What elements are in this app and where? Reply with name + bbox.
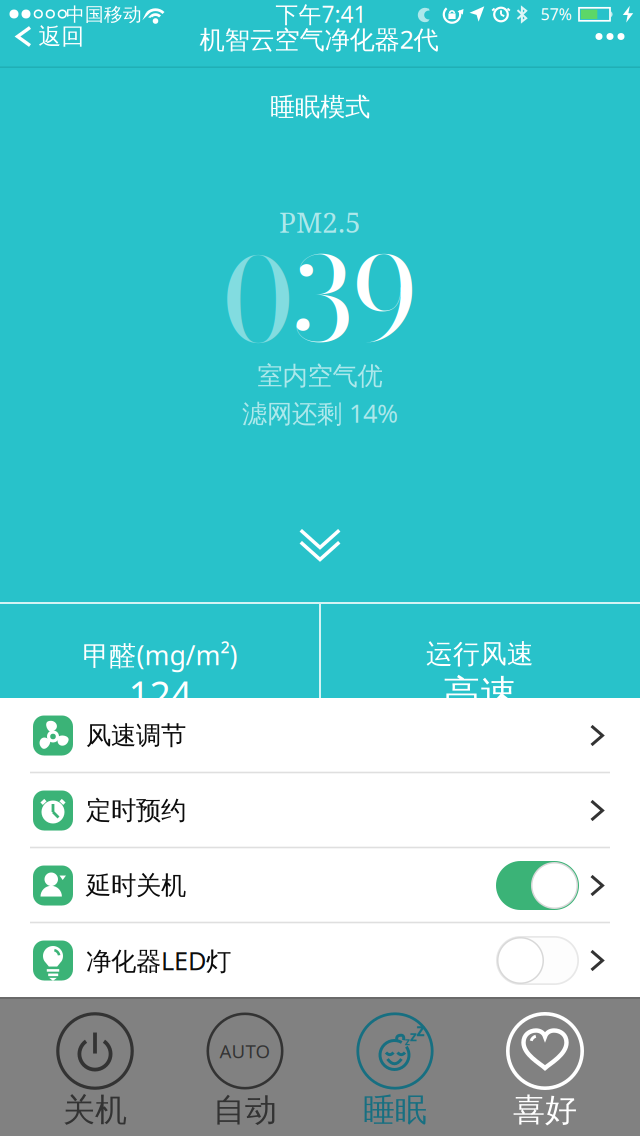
staticText: 中国移动	[66, 3, 142, 26]
staticText: z	[409, 1026, 416, 1045]
staticText: 高速	[443, 671, 517, 717]
staticText: PM2.5	[279, 203, 361, 241]
button[interactable]: 关机	[20, 998, 170, 1136]
button[interactable]: More	[595, 28, 624, 45]
staticText: z	[404, 1034, 409, 1048]
staticText: 滤网还剩 14%	[242, 396, 398, 430]
button[interactable]: 返回	[7, 16, 93, 56]
button[interactable]: 净化器LED灯	[0, 923, 640, 998]
staticText: 0	[222, 213, 293, 387]
button[interactable]: 定时预约	[0, 773, 640, 848]
staticText: 睡眠模式	[270, 91, 370, 122]
staticText: 甲醛(mg/m²)	[82, 637, 237, 673]
staticText: 39	[293, 213, 417, 387]
staticText: 净化器LED灯	[86, 944, 231, 977]
button[interactable]: AUTO	[170, 998, 320, 1136]
button[interactable]: Switch off	[496, 936, 579, 985]
staticText: 延时关机	[86, 870, 186, 901]
button[interactable]: 延时关机	[0, 848, 640, 923]
button[interactable]: 风速调节	[0, 698, 640, 773]
staticText: 下午7:41	[275, 0, 366, 29]
staticText: AUTO	[219, 1039, 270, 1063]
button[interactable]: z	[320, 998, 470, 1136]
staticText: 室内空气优	[257, 360, 382, 391]
button[interactable]: Collapse	[299, 528, 341, 561]
button[interactable]: Switch on	[496, 861, 579, 910]
staticText: 57%	[540, 3, 571, 25]
staticText: 风速调节	[86, 720, 186, 751]
staticText: 睡眠	[363, 1090, 427, 1130]
staticText: 124	[128, 669, 191, 719]
staticText: 关机	[63, 1090, 127, 1130]
staticText: 机智云空气净化器2代	[199, 22, 438, 56]
staticText: 返回	[38, 23, 84, 50]
button[interactable]: 喜好	[470, 998, 620, 1136]
staticText: 定时预约	[86, 795, 186, 826]
staticText: 喜好	[513, 1090, 577, 1130]
staticText: 自动	[213, 1090, 277, 1130]
staticText: z	[416, 1018, 425, 1041]
staticText: 运行风速	[426, 638, 534, 670]
